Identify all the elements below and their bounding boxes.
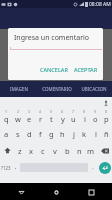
staticText: n	[77, 146, 82, 156]
staticText: 2	[17, 109, 20, 114]
staticText: i	[84, 114, 86, 124]
button[interactable]: 9	[90, 108, 101, 125]
staticText: 1	[5, 109, 8, 114]
button[interactable]: k	[79, 125, 90, 142]
staticText: COMENTARIO	[42, 86, 72, 92]
staticText: 6	[61, 109, 64, 114]
staticText: z	[18, 146, 22, 156]
staticText: IMAGEN	[10, 86, 28, 92]
button[interactable]: Enter	[99, 162, 111, 174]
button[interactable]: Voice input	[101, 98, 110, 107]
staticText: h	[60, 129, 65, 139]
button[interactable]: Back	[14, 185, 28, 199]
button[interactable]: Recents	[84, 185, 98, 199]
button[interactable]: 1	[0, 108, 12, 125]
button[interactable]: 0	[101, 108, 112, 125]
staticText: ñ	[104, 129, 109, 139]
staticText: ?123	[1, 165, 11, 171]
staticText: b	[65, 146, 70, 156]
staticText: q	[4, 114, 9, 124]
staticText: 8	[83, 109, 86, 114]
staticText: Ingresa un comentario	[14, 33, 90, 43]
button[interactable]: x	[25, 142, 37, 159]
button[interactable]: z	[14, 142, 25, 159]
button[interactable]: n	[73, 142, 85, 159]
staticText: v	[53, 146, 57, 156]
button[interactable]: ?123	[0, 159, 12, 176]
button[interactable]: 4	[35, 108, 46, 125]
button[interactable]: ,	[12, 159, 20, 176]
button[interactable]: f	[35, 125, 46, 142]
staticText: 08:08 AM	[89, 1, 111, 8]
button[interactable]: Backspace	[97, 142, 112, 159]
staticText: x	[29, 146, 33, 156]
staticText: p	[104, 114, 109, 124]
button[interactable]: c	[37, 142, 49, 159]
staticText: 3	[28, 109, 31, 114]
staticText: ACEPTAR	[74, 66, 98, 73]
button[interactable]: IMAGEN	[0, 81, 38, 97]
button[interactable]: 3	[24, 108, 35, 125]
button[interactable]: g	[46, 125, 57, 142]
staticText: s	[16, 129, 20, 139]
staticText: UBICACION	[81, 86, 107, 92]
button[interactable]: h	[57, 125, 68, 142]
staticText: l	[95, 129, 97, 139]
staticText: c	[41, 146, 45, 156]
button[interactable]: UBICACION	[75, 81, 112, 97]
button[interactable]: ACEPTAR	[72, 64, 100, 75]
button[interactable]: 6	[57, 108, 68, 125]
staticText: 0	[105, 109, 108, 114]
button[interactable]: v	[49, 142, 61, 159]
staticText: k	[82, 129, 87, 139]
button[interactable]: d	[24, 125, 35, 142]
staticText: CANCELAR	[40, 66, 68, 73]
staticText: w	[15, 114, 21, 124]
button[interactable]: .	[88, 159, 97, 176]
staticText: a	[4, 129, 9, 139]
button[interactable]: a	[0, 125, 12, 142]
staticText: r	[39, 114, 43, 124]
button[interactable]: 2	[12, 108, 24, 125]
staticText: y	[61, 114, 65, 124]
staticText: u	[71, 114, 76, 124]
staticText: 7	[72, 109, 75, 114]
button[interactable]: Shift	[0, 142, 14, 159]
button[interactable]: CANCELAR	[38, 64, 70, 75]
staticText: e	[27, 114, 32, 124]
staticText: f	[39, 129, 42, 139]
button[interactable]: 7	[68, 108, 79, 125]
staticText: t	[50, 114, 53, 124]
button[interactable]: j	[68, 125, 79, 142]
button[interactable]: s	[12, 125, 24, 142]
button[interactable]: Home	[49, 185, 63, 199]
staticText: o	[93, 114, 98, 124]
button[interactable]: b	[61, 142, 73, 159]
staticText: d	[27, 129, 32, 139]
staticText: 4	[39, 109, 42, 114]
staticText: .	[92, 163, 94, 171]
button[interactable]: l	[90, 125, 101, 142]
staticText: j	[73, 129, 75, 139]
button[interactable]: 8	[79, 108, 90, 125]
staticText: 5	[50, 109, 53, 114]
button[interactable]: 5	[46, 108, 57, 125]
button[interactable]: ñ	[101, 125, 112, 142]
staticText: ,	[15, 163, 17, 171]
staticText: g	[49, 129, 54, 139]
button[interactable]: COMENTARIO	[38, 81, 75, 97]
staticText: 9	[94, 109, 97, 114]
staticText: m	[87, 146, 95, 156]
button[interactable]: m	[85, 142, 97, 159]
